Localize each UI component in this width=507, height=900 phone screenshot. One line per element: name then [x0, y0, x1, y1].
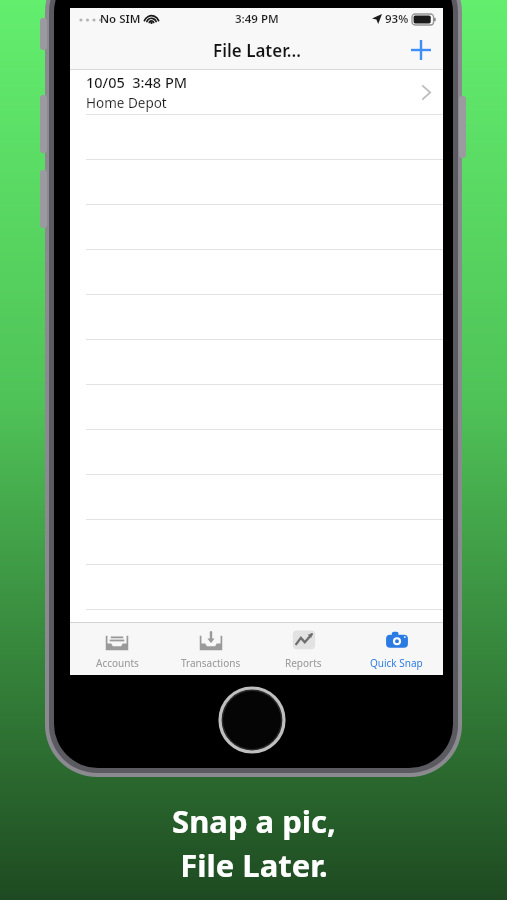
button[interactable]: Quick Snap	[350, 623, 443, 675]
staticText: No SIM	[100, 11, 141, 27]
button[interactable]: 10/05 3:48 PM	[70, 70, 443, 114]
staticText: Quick Snap	[370, 656, 423, 670]
button[interactable]: Add	[399, 30, 443, 70]
staticText: Snap a pic,	[172, 800, 336, 842]
staticText: File Later.	[180, 844, 328, 886]
button[interactable]: Reports	[257, 623, 350, 675]
button[interactable]: Accounts	[70, 623, 164, 675]
staticText: Transactions	[181, 656, 241, 670]
staticText: Accounts	[96, 656, 139, 670]
staticText: Reports	[285, 656, 322, 670]
staticText: 10/05 3:48 PM	[86, 72, 188, 92]
staticText: File Later...	[213, 39, 301, 62]
staticText: Home Depot	[86, 94, 167, 112]
button[interactable]: Transactions	[164, 623, 257, 675]
staticText: 93%	[385, 11, 409, 27]
staticText: 3:49 PM	[235, 11, 279, 27]
